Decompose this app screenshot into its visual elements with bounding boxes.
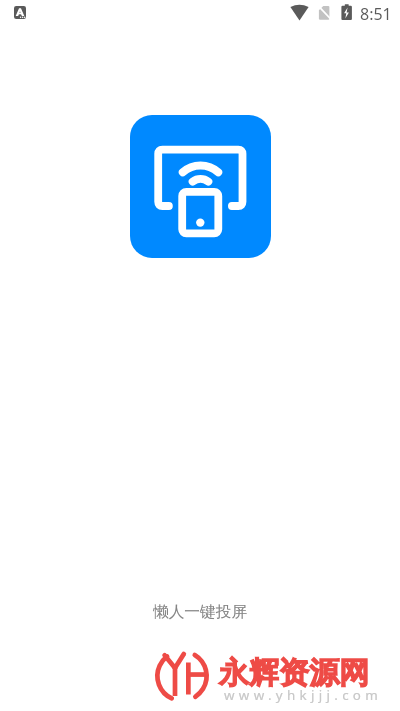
staticText: 永辉资源网 — [219, 654, 369, 692]
button[interactable]: 懒人一键投屏 screen mirroring app icon — [130, 115, 271, 258]
staticText: www.yhkjjj.com — [224, 686, 383, 704]
staticText: 8:51 — [360, 3, 392, 25]
staticText: 懒人一键投屏 — [0, 602, 400, 622]
